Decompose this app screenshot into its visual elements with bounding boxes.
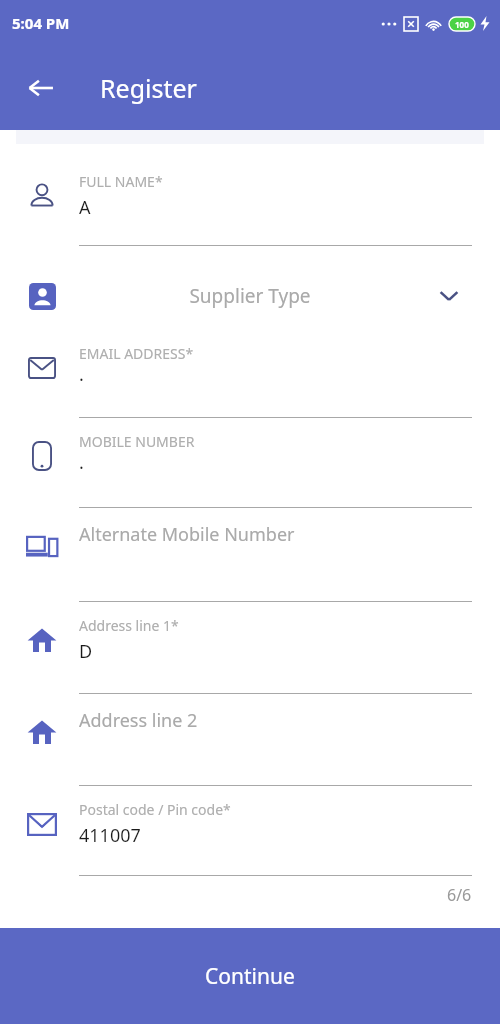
staticText: Supplier Type	[189, 283, 311, 309]
staticText: ·	[79, 367, 84, 392]
staticText: 411007	[79, 823, 141, 848]
staticText: Alternate Mobile Number	[79, 522, 295, 547]
button[interactable]: Supplier Type	[0, 254, 500, 338]
other: Expand	[434, 281, 464, 311]
staticText: 100	[455, 19, 469, 30]
staticText: EMAIL ADDRESS*	[79, 344, 194, 363]
button[interactable]: Back	[18, 65, 64, 111]
staticText: FULL NAME*	[79, 172, 163, 191]
button[interactable]: Alternate Mobile Number	[0, 516, 500, 610]
button[interactable]: EMAIL ADDRESS*	[0, 338, 500, 426]
staticText: D	[79, 639, 93, 664]
staticText: Address line 2	[79, 708, 198, 733]
staticText: Postal code / Pin code*	[79, 800, 231, 819]
staticText: 6/6	[447, 884, 472, 906]
button[interactable]: Continue	[0, 928, 500, 1024]
staticText: Address line 1*	[79, 616, 179, 635]
staticText: MOBILE NUMBER	[79, 432, 195, 451]
staticText: Continue	[205, 962, 295, 991]
staticText: ·	[79, 455, 84, 480]
staticText: 5:04 PM	[12, 13, 70, 33]
button[interactable]: Address line 1*	[0, 610, 500, 702]
button[interactable]: FULL NAME*	[0, 166, 500, 254]
staticText: Register	[100, 71, 197, 105]
button[interactable]: MOBILE NUMBER	[0, 426, 500, 516]
staticText: A	[79, 195, 91, 220]
button[interactable]: Address line 2	[0, 702, 500, 794]
button[interactable]: Postal code / Pin code*	[0, 794, 500, 884]
